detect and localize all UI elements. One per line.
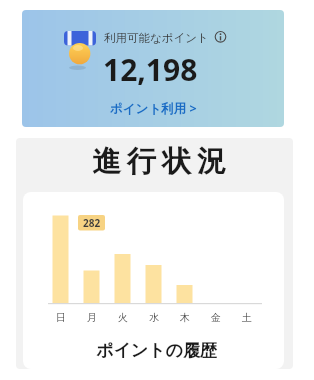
staticText: ポイントの履歴 <box>96 340 217 361</box>
staticText: 進行状況 <box>89 143 229 180</box>
staticText: 12,198 <box>103 49 198 90</box>
staticText: 日 <box>56 311 66 324</box>
staticText: ポイント利用 > <box>110 100 197 117</box>
staticText: 火 <box>118 311 128 324</box>
button[interactable]: ポイントの履歴 <box>26 340 287 361</box>
staticText: 利用可能なポイント <box>104 31 209 45</box>
staticText: 282 <box>83 216 101 230</box>
button[interactable]: ポイント利用 > <box>22 100 284 117</box>
staticText: 木 <box>180 311 190 324</box>
button[interactable] <box>22 10 284 127</box>
staticText: 土 <box>242 311 252 324</box>
staticText: 水 <box>149 311 159 324</box>
staticText: 金 <box>211 311 221 324</box>
staticText: 月 <box>87 311 97 324</box>
